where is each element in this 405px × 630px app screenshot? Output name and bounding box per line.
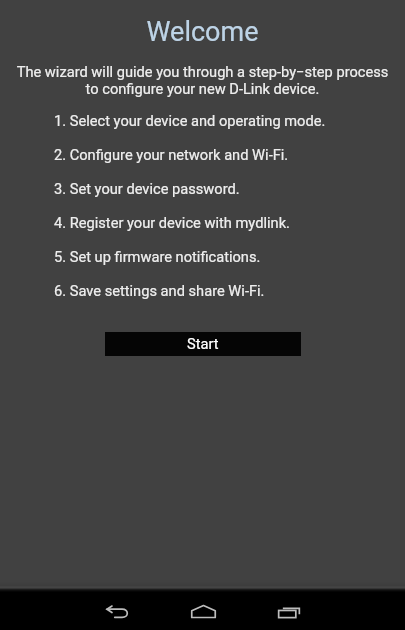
button[interactable]: Home bbox=[183, 592, 223, 630]
staticText: 2. Configure your network and Wi-Fi. bbox=[54, 146, 289, 163]
button[interactable]: 5. Set up firmware notifications. bbox=[0, 239, 405, 273]
button[interactable]: Start bbox=[105, 332, 301, 356]
button[interactable]: 3. Set your device password. bbox=[0, 171, 405, 205]
staticText: The wizard will guide you through a step… bbox=[11, 63, 394, 97]
staticText: Welcome bbox=[0, 16, 405, 48]
staticText: 3. Set your device password. bbox=[54, 180, 240, 197]
staticText: 6. Save settings and share Wi-Fi. bbox=[54, 282, 265, 299]
button[interactable]: 4. Register your device with mydlink. bbox=[0, 205, 405, 239]
button[interactable]: 1. Select your device and operating mode… bbox=[0, 103, 405, 137]
button[interactable]: Back bbox=[97, 592, 137, 630]
button[interactable]: Recent apps bbox=[269, 592, 309, 630]
staticText: 1. Select your device and operating mode… bbox=[54, 112, 326, 129]
staticText: 5. Set up firmware notifications. bbox=[54, 248, 261, 265]
button[interactable]: 2. Configure your network and Wi-Fi. bbox=[0, 137, 405, 171]
staticText: 4. Register your device with mydlink. bbox=[54, 214, 290, 231]
button[interactable]: 6. Save settings and share Wi-Fi. bbox=[0, 273, 405, 307]
staticText: Start bbox=[187, 335, 219, 352]
